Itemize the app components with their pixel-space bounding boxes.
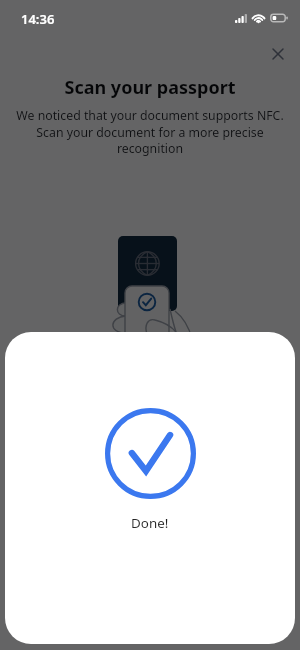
staticText: Done! (131, 514, 169, 532)
button[interactable]: Close (263, 39, 293, 69)
staticText: Scan your passport (0, 75, 300, 100)
staticText: We noticed that your document supports N… (13, 107, 287, 156)
button[interactable]: Done! (5, 332, 295, 644)
staticText: 14:36 (21, 10, 55, 28)
